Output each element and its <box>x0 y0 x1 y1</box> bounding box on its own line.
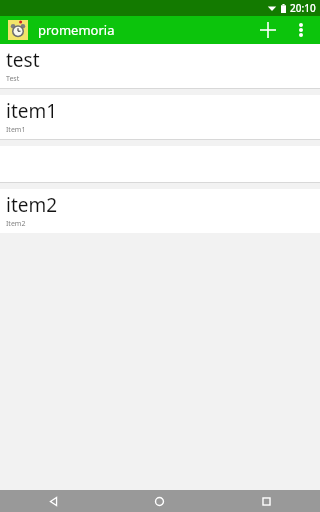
button[interactable]: More options <box>286 16 316 44</box>
staticText: item2 <box>6 192 58 218</box>
button[interactable]: item2 <box>0 189 320 233</box>
staticText: Test <box>6 74 20 84</box>
staticText: Item2 <box>6 219 26 229</box>
button[interactable]: item1 <box>0 95 320 139</box>
staticText: test <box>6 47 40 73</box>
staticText: 20:10 <box>290 1 316 15</box>
staticText: item1 <box>6 98 58 124</box>
button[interactable]: Add <box>250 16 286 44</box>
button[interactable]: Recent apps <box>213 490 320 512</box>
staticText: promemoria <box>38 21 115 39</box>
button[interactable]: Home <box>106 490 213 512</box>
button[interactable]: Back <box>0 490 106 512</box>
button[interactable]: test <box>0 44 320 88</box>
staticText: Item1 <box>6 125 26 135</box>
